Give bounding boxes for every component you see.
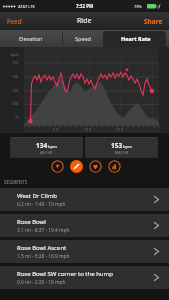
staticText: 125 <box>12 88 19 93</box>
staticText: AVG HR <box>40 150 53 155</box>
button[interactable]: Elevation <box>0 30 62 47</box>
button[interactable]: Heart Rate <box>103 30 169 47</box>
button[interactable] <box>108 160 121 173</box>
staticText: Speed <box>75 35 91 42</box>
staticText: SEGMENTS <box>4 179 28 185</box>
staticText: 153 <box>111 141 123 150</box>
button[interactable]: Rose Bowl Ascent <box>0 240 169 263</box>
staticText: 100 <box>12 101 19 106</box>
staticText: bpm <box>123 144 132 149</box>
staticText: Heart Rate <box>121 35 151 42</box>
button[interactable]: Rose Bowl SW corner to the hump <box>0 266 169 289</box>
staticText: Ride <box>77 16 92 26</box>
staticText: 150 <box>12 74 19 79</box>
staticText: 1.5 mi - 5:28 - 16.9 mph <box>17 253 70 260</box>
button[interactable] <box>70 160 83 173</box>
staticText: 75 <box>15 115 20 120</box>
button[interactable]: West Dr Climb <box>0 188 169 211</box>
staticText: Elevation <box>19 35 43 42</box>
staticText: 175 <box>12 60 19 65</box>
staticText: 15.0 <box>116 127 123 132</box>
staticText: bpm <box>48 144 57 149</box>
staticText: 5.0 <box>53 127 58 132</box>
staticText: Rose Bowl <box>17 218 46 226</box>
button[interactable]: Rose Bowl <box>0 214 169 237</box>
button[interactable]: Speed <box>62 30 103 47</box>
staticText: West Dr Climb <box>17 192 58 200</box>
staticText: 10.0 <box>84 127 91 132</box>
staticText: Share <box>144 17 163 26</box>
staticText: Feed <box>7 17 22 26</box>
staticText: 0.2 mi - 1:40 - 10 mph <box>17 201 66 208</box>
staticText: AT&T LTE <box>18 4 35 9</box>
staticText: Rose Bowl SW corner to the hump <box>17 270 113 278</box>
staticText: 3.1 mi - 8:37 - 19.4 mph <box>17 227 70 234</box>
staticText: bpm <box>11 52 19 57</box>
staticText: 7:32 PM <box>76 3 94 9</box>
button[interactable]: 134 <box>10 138 83 158</box>
staticText: Rose Bowl Ascent <box>17 244 67 252</box>
staticText: 0.6 mi - 2:20 - 16 mph <box>17 279 66 286</box>
staticText: MAX HR <box>115 150 129 155</box>
button[interactable]: 153 <box>85 138 158 158</box>
button[interactable] <box>89 160 102 173</box>
button[interactable] <box>51 160 64 173</box>
staticText: 134 <box>36 141 48 150</box>
button[interactable]: Feed <box>0 13 29 30</box>
staticText: 79% <box>134 4 142 9</box>
button[interactable]: Share <box>138 13 169 30</box>
